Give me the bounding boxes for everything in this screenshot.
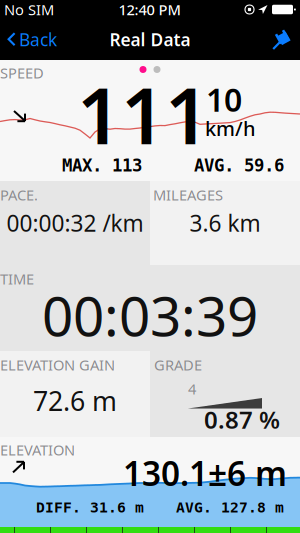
staticText: 3.6 km <box>189 208 260 238</box>
button[interactable]: Back <box>0 19 67 60</box>
staticText: 72.6 m <box>33 383 117 418</box>
staticText: 00:03:39 <box>42 279 258 351</box>
staticText: MAX. 113 <box>62 156 142 175</box>
staticText: 0.87 % <box>204 404 280 435</box>
staticText: DIFF. 31.6 m <box>36 499 144 516</box>
staticText: ELEVATION GAIN <box>0 355 115 374</box>
staticText: AVG. 127.8 m <box>176 499 284 516</box>
staticText: 130.1±6 m <box>123 451 287 495</box>
staticText: Real Data <box>109 28 190 51</box>
staticText: TIME <box>0 269 34 288</box>
staticText: 00:00:32 /km <box>6 208 143 238</box>
staticText: km/h <box>205 115 256 142</box>
staticText: 111 <box>77 63 209 166</box>
staticText: 12:40 PM <box>118 0 180 19</box>
staticText: 10 <box>206 78 242 120</box>
staticText: GRADE <box>154 355 202 374</box>
staticText: 4 <box>188 379 196 398</box>
staticText: No SIM <box>4 0 54 19</box>
staticText: MILEAGES <box>153 185 223 204</box>
button[interactable]: Pin location <box>272 19 300 60</box>
staticText: PACE. <box>0 185 38 204</box>
staticText: SPEED <box>0 63 44 82</box>
staticText: Back <box>19 28 57 51</box>
staticText: AVG. 59.6 <box>194 156 284 175</box>
staticText: ELEVATION <box>0 440 75 459</box>
